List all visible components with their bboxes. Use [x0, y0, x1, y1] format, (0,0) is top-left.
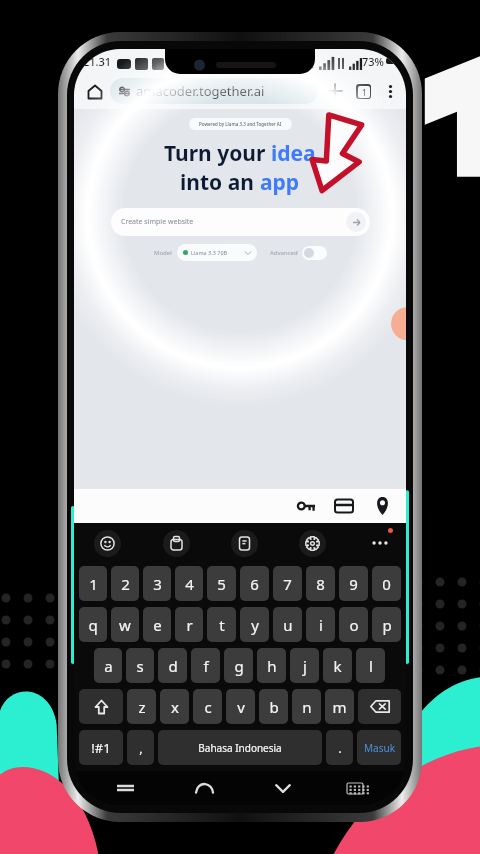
- button[interactable]: ,: [127, 730, 154, 765]
- staticText: 8: [316, 574, 325, 594]
- button[interactable]: g: [224, 648, 253, 683]
- button[interactable]: Create simple website: [111, 208, 370, 236]
- staticText: r: [186, 615, 193, 635]
- button[interactable]: h: [257, 648, 286, 683]
- button[interactable]: x: [160, 689, 189, 724]
- button[interactable]: i: [306, 607, 335, 642]
- button[interactable]: Shift: [79, 689, 123, 724]
- button[interactable]: Tabs: [349, 77, 377, 105]
- staticText: 21.31: [83, 54, 112, 69]
- staticText: ,: [139, 739, 143, 757]
- button[interactable]: v: [226, 689, 255, 724]
- staticText: v: [237, 697, 245, 717]
- button[interactable]: o: [339, 607, 368, 642]
- staticText: 7: [283, 574, 292, 594]
- button[interactable]: l: [356, 648, 385, 683]
- button[interactable]: More options: [377, 78, 403, 104]
- button[interactable]: 2: [111, 566, 139, 601]
- button[interactable]: !#1: [79, 730, 123, 765]
- button[interactable]: Backspace: [358, 689, 401, 724]
- button[interactable]: e: [143, 607, 171, 642]
- staticText: i: [319, 615, 323, 635]
- staticText: x: [171, 697, 179, 717]
- button[interactable]: Settings: [299, 530, 326, 557]
- button[interactable]: Masuk: [357, 730, 401, 765]
- button[interactable]: b: [259, 689, 288, 724]
- button[interactable]: Addresses: [367, 491, 397, 521]
- staticText: Powered by Llama 3.3 and Together AI: [199, 121, 282, 127]
- button[interactable]: Bahasa Indonesia: [158, 730, 322, 765]
- button[interactable]: y: [240, 607, 269, 642]
- button[interactable]: 4: [175, 566, 203, 601]
- staticText: t: [219, 615, 225, 635]
- staticText: e: [153, 615, 162, 635]
- button[interactable]: 7: [273, 566, 302, 601]
- button[interactable]: Passwords: [291, 491, 321, 521]
- button[interactable]: f: [191, 648, 220, 683]
- staticText: 2: [121, 574, 130, 594]
- button[interactable]: 5: [207, 566, 236, 601]
- button[interactable]: 1: [79, 566, 107, 601]
- button[interactable]: New tab: [321, 77, 349, 105]
- staticText: Turn your: [164, 139, 271, 168]
- button[interactable]: Payment methods: [329, 491, 359, 521]
- button[interactable]: w: [111, 607, 139, 642]
- staticText: 9: [349, 574, 358, 594]
- staticText: w: [119, 615, 131, 635]
- button[interactable]: z: [127, 689, 156, 724]
- staticText: !#1: [91, 739, 111, 757]
- staticText: n: [302, 697, 312, 717]
- button[interactable]: Hide keyboard: [269, 774, 297, 802]
- staticText: Llama 3.3 70B: [191, 249, 228, 256]
- staticText: .: [338, 739, 342, 757]
- staticText: idea: [271, 139, 316, 168]
- staticText: l: [369, 656, 373, 676]
- staticText: 4: [185, 574, 194, 594]
- button[interactable]: t: [207, 607, 236, 642]
- staticText: Bahasa Indonesia: [198, 741, 282, 755]
- button[interactable]: m: [325, 689, 354, 724]
- staticText: m: [332, 697, 347, 717]
- staticText: p: [382, 615, 392, 635]
- button[interactable]: u: [273, 607, 302, 642]
- button[interactable]: k: [323, 648, 352, 683]
- button[interactable]: p: [372, 607, 401, 642]
- button[interactable]: 8: [306, 566, 335, 601]
- button[interactable]: Stickers: [231, 530, 258, 557]
- button[interactable]: Llama 3.3 70B: [177, 244, 257, 261]
- button[interactable]: Back: [190, 774, 218, 802]
- staticText: z: [138, 697, 146, 717]
- staticText: b: [269, 697, 279, 717]
- staticText: Advanced: [270, 249, 298, 257]
- button[interactable]: s: [126, 648, 154, 683]
- button[interactable]: 9: [339, 566, 368, 601]
- button[interactable]: Recents: [111, 774, 139, 802]
- button[interactable]: r: [175, 607, 203, 642]
- button[interactable]: Emoji: [94, 530, 121, 557]
- button[interactable]: q: [79, 607, 107, 642]
- staticText: 5: [217, 574, 226, 594]
- button[interactable]: a: [94, 648, 122, 683]
- staticText: h: [267, 656, 277, 676]
- staticText: Model: [154, 249, 172, 257]
- staticText: Masuk: [364, 741, 395, 755]
- button[interactable]: 6: [240, 566, 269, 601]
- button[interactable]: Clipboard: [163, 530, 190, 557]
- button[interactable]: c: [193, 689, 222, 724]
- button[interactable]: Powered by Llama 3.3 and Together AI: [189, 118, 292, 130]
- staticText: into an: [180, 168, 260, 197]
- button[interactable]: Home: [81, 78, 108, 105]
- button[interactable]: Switch keyboard: [341, 774, 369, 802]
- button[interactable]: More keyboard options: [367, 530, 393, 556]
- button[interactable]: Submit: [346, 212, 366, 232]
- button[interactable]: n: [292, 689, 321, 724]
- staticText: 3: [153, 574, 162, 594]
- button[interactable]: 3: [143, 566, 171, 601]
- button[interactable]: amacoder.together.ai: [110, 78, 318, 104]
- button[interactable]: 0: [372, 566, 401, 601]
- button[interactable]: j: [290, 648, 319, 683]
- button[interactable]: .: [326, 730, 353, 765]
- button[interactable]: Advanced toggle: [302, 246, 327, 260]
- staticText: app: [260, 168, 300, 197]
- button[interactable]: d: [158, 648, 187, 683]
